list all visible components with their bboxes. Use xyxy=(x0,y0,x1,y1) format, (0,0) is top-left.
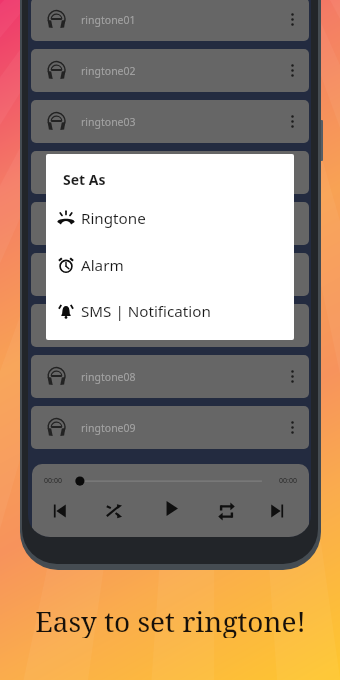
button[interactable]: More options xyxy=(275,304,309,347)
staticText: Set As xyxy=(63,170,106,189)
staticText: 00:00 xyxy=(279,476,297,486)
button[interactable]: ringtone08 xyxy=(31,355,309,398)
button[interactable]: ringtone02 xyxy=(31,49,309,92)
button[interactable]: ringtone05 xyxy=(31,202,309,245)
staticText: ringtone01 xyxy=(81,13,136,27)
staticText: ringtone07 xyxy=(81,319,136,333)
button[interactable]: Ringtone xyxy=(46,195,294,241)
staticText: Ringtone xyxy=(81,208,146,229)
staticText: ringtone03 xyxy=(81,115,136,129)
button[interactable]: Shuffle xyxy=(98,495,130,527)
button[interactable]: More options xyxy=(275,253,309,296)
staticText: ringtone06 xyxy=(81,268,136,282)
staticText: ringtone02 xyxy=(81,64,136,78)
button[interactable]: More options xyxy=(275,151,309,194)
staticText: ringtone09 xyxy=(81,421,136,435)
button[interactable]: More options xyxy=(275,0,309,41)
button[interactable]: More options xyxy=(275,100,309,143)
staticText: ringtone08 xyxy=(81,370,136,384)
button[interactable]: More options xyxy=(275,355,309,398)
button[interactable]: Next xyxy=(261,495,293,527)
button[interactable]: ringtone03 xyxy=(31,100,309,143)
button[interactable]: ringtone06 xyxy=(31,253,309,296)
button[interactable]: Play xyxy=(155,492,187,524)
button[interactable]: More options xyxy=(275,49,309,92)
staticText: Easy to set ringtone! xyxy=(35,602,306,638)
staticText: SMS | Notification xyxy=(81,301,211,322)
button[interactable]: ringtone04 xyxy=(31,151,309,194)
button[interactable]: ringtone07 xyxy=(31,304,309,347)
button[interactable]: SMS | Notification xyxy=(46,288,294,334)
staticText: ringtone04 xyxy=(81,166,136,180)
button[interactable]: ringtone09 xyxy=(31,406,309,449)
staticText: Alarm xyxy=(81,255,124,276)
staticText: 00:00 xyxy=(44,476,62,486)
button[interactable]: Alarm xyxy=(46,242,294,288)
button[interactable]: Repeat xyxy=(210,495,242,527)
button[interactable]: ringtone01 xyxy=(31,0,309,41)
staticText: ringtone05 xyxy=(81,217,136,231)
button[interactable]: More options xyxy=(275,406,309,449)
button[interactable]: Previous xyxy=(44,495,76,527)
button[interactable]: More options xyxy=(275,202,309,245)
